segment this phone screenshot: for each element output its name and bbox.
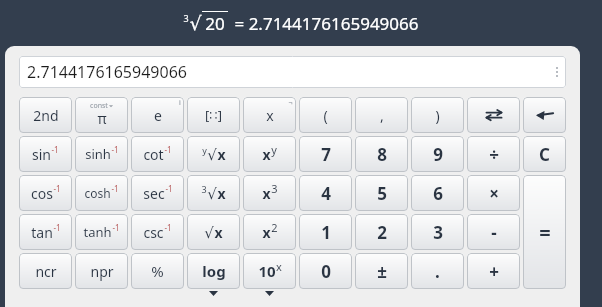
button[interactable]: ±: [355, 253, 408, 289]
other: More options: [556, 67, 558, 77]
staticText: ÷: [489, 143, 499, 166]
staticText: ¬: [288, 98, 293, 108]
staticText: -1: [51, 144, 59, 155]
button[interactable]: sec: [131, 175, 184, 211]
button[interactable]: 5: [355, 175, 408, 211]
staticText: x: [276, 259, 282, 274]
button[interactable]: y: [187, 136, 240, 172]
button[interactable]: ): [411, 97, 464, 133]
staticText: x: [262, 223, 271, 242]
staticText: 2nd: [33, 106, 59, 125]
button[interactable]: 2.7144176165949066: [19, 56, 566, 88]
staticText: const: [90, 101, 108, 111]
button[interactable]: Swap: [467, 97, 520, 133]
staticText: -1: [164, 222, 172, 233]
staticText: √: [207, 185, 217, 202]
button[interactable]: ncr: [19, 253, 72, 289]
button[interactable]: e: [131, 97, 184, 133]
staticText: -1: [112, 222, 120, 233]
button[interactable]: %: [131, 253, 184, 289]
button[interactable]: tan: [19, 214, 72, 250]
button[interactable]: 3: [411, 214, 464, 250]
staticText: sec: [143, 184, 165, 203]
staticText: -1: [164, 144, 172, 155]
button[interactable]: 8: [355, 136, 408, 172]
staticText: 2.7144176165949066: [27, 61, 187, 83]
button[interactable]: npr: [75, 253, 128, 289]
staticText: x: [214, 223, 223, 242]
button[interactable]: ÷: [467, 136, 520, 172]
staticText: sin: [32, 145, 51, 164]
staticText: x: [217, 145, 226, 164]
staticText: 3: [271, 181, 278, 196]
staticText: tan: [31, 223, 53, 242]
button[interactable]: sinh: [75, 136, 128, 172]
button[interactable]: C: [523, 136, 566, 172]
staticText: 3: [201, 183, 207, 195]
button[interactable]: 10: [243, 253, 296, 289]
button[interactable]: const: [75, 97, 128, 133]
button[interactable]: 3: [187, 175, 240, 211]
staticText: 0: [321, 260, 331, 283]
button[interactable]: [∷]: [187, 97, 240, 133]
staticText: +: [489, 260, 499, 283]
button[interactable]: cosh: [75, 175, 128, 211]
button[interactable]: Backspace: [523, 97, 566, 133]
staticText: y: [271, 142, 277, 157]
button[interactable]: csc: [131, 214, 184, 250]
button[interactable]: ,: [355, 97, 408, 133]
staticText: 3: [183, 12, 189, 24]
staticText: -1: [165, 183, 173, 194]
button[interactable]: cot: [131, 136, 184, 172]
button[interactable]: 7: [299, 136, 352, 172]
button[interactable]: =: [523, 175, 566, 289]
button[interactable]: -: [467, 214, 520, 250]
staticText: ,: [380, 106, 384, 125]
button[interactable]: +: [467, 253, 520, 289]
staticText: e: [154, 106, 162, 125]
staticText: √: [207, 146, 217, 163]
staticText: csc: [143, 223, 164, 242]
staticText: ): [435, 106, 440, 125]
button[interactable]: x: [243, 175, 296, 211]
staticText: .: [435, 260, 440, 283]
button[interactable]: ×: [467, 175, 520, 211]
staticText: 8: [377, 143, 387, 166]
staticText: x: [262, 184, 271, 203]
button[interactable]: tanh: [75, 214, 128, 250]
staticText: =: [539, 219, 551, 246]
button[interactable]: x: [243, 214, 296, 250]
button[interactable]: cos: [19, 175, 72, 211]
staticText: 4: [321, 182, 331, 205]
staticText: tanh: [83, 223, 112, 241]
staticText: 2: [271, 220, 278, 235]
staticText: 5: [377, 182, 387, 205]
button[interactable]: 9: [411, 136, 464, 172]
button[interactable]: 2: [355, 214, 408, 250]
staticText: log: [202, 261, 226, 281]
staticText: cot: [143, 145, 164, 164]
button[interactable]: 4: [299, 175, 352, 211]
button[interactable]: √: [187, 214, 240, 250]
button[interactable]: 1: [299, 214, 352, 250]
button[interactable]: 0: [299, 253, 352, 289]
staticText: y: [202, 144, 207, 156]
staticText: 9: [433, 143, 443, 166]
button[interactable]: (: [299, 97, 352, 133]
button[interactable]: log: [187, 253, 240, 289]
button[interactable]: x: [243, 136, 296, 172]
button[interactable]: sin: [19, 136, 72, 172]
button[interactable]: 2nd: [19, 97, 72, 133]
staticText: [∷]: [205, 106, 222, 124]
staticText: √: [189, 12, 202, 34]
button[interactable]: x: [243, 97, 296, 133]
button[interactable]: 6: [411, 175, 464, 211]
staticText: x: [262, 145, 271, 164]
button[interactable]: .: [411, 253, 464, 289]
staticText: ×: [489, 182, 499, 205]
staticText: 1: [321, 221, 331, 244]
staticText: 10: [258, 261, 276, 281]
